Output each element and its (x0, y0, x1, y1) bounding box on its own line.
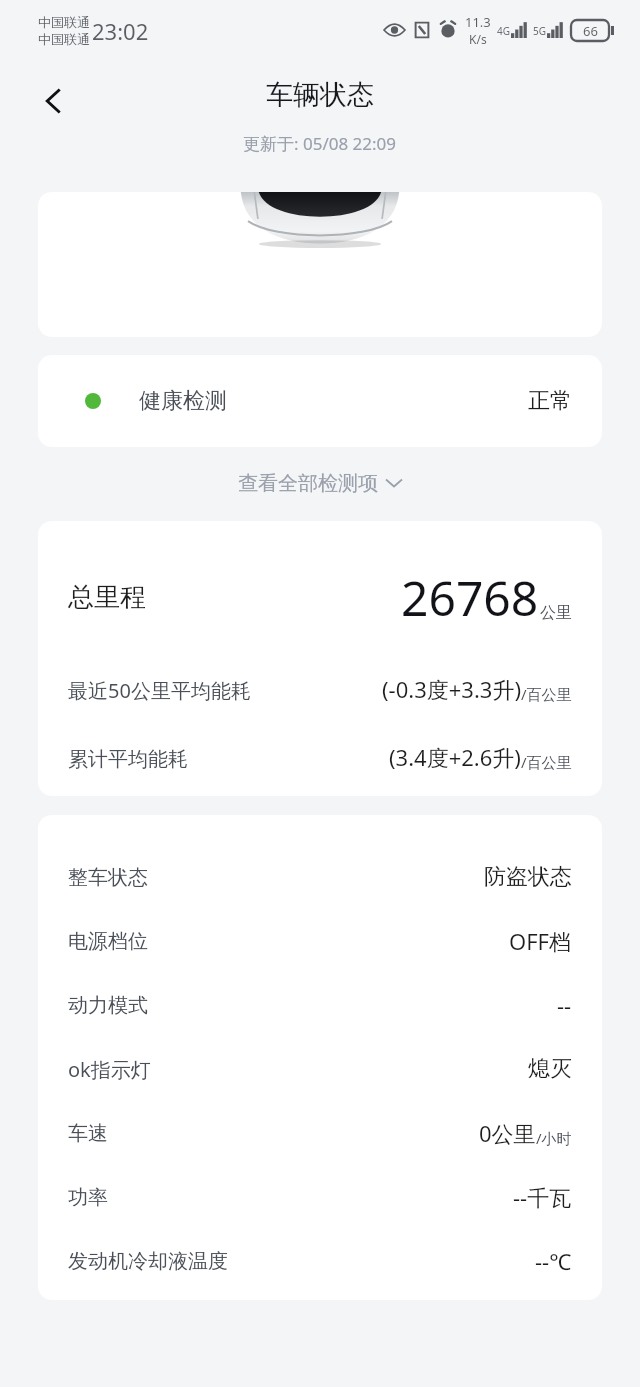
staticText: 23:02 (92, 16, 149, 46)
button[interactable]: 整车状态 (38, 845, 602, 909)
staticText: 防盗状态 (484, 863, 572, 891)
staticText: 公里 (540, 603, 572, 623)
staticText: 动力模式 (68, 993, 148, 1018)
button[interactable] (38, 192, 602, 337)
staticText: --千瓦 (513, 1182, 572, 1212)
staticText: -- (557, 990, 572, 1020)
button[interactable]: 发动机冷却液温度 (38, 1229, 602, 1293)
staticText: (3.4度+2.6升) (389, 742, 521, 772)
button[interactable]: 查看全部检测项 (0, 463, 640, 503)
button[interactable]: 车速 (38, 1101, 602, 1165)
staticText: 电源档位 (68, 929, 148, 954)
staticText: 4G (497, 24, 510, 38)
staticText: /百公里 (521, 684, 572, 704)
staticText: 车辆状态 (266, 78, 374, 112)
button[interactable]: 健康检测 (38, 355, 602, 447)
staticText: /小时 (536, 1128, 572, 1148)
staticText: 66 (583, 22, 598, 40)
button[interactable]: 总里程 (38, 521, 602, 796)
staticText: 5G (533, 24, 546, 38)
button[interactable]: 功率 (38, 1165, 602, 1229)
staticText: 11.3 (465, 13, 491, 31)
staticText: 最近50公里平均能耗 (68, 677, 251, 704)
button[interactable]: 电源档位 (38, 909, 602, 973)
staticText: 中国联通 (38, 31, 90, 47)
staticText: ok指示灯 (68, 1056, 151, 1083)
staticText: 26768 (401, 565, 539, 630)
staticText: 整车状态 (68, 865, 148, 890)
staticText: (-0.3度+3.3升) (382, 674, 521, 704)
staticText: OFF档 (509, 926, 572, 956)
button[interactable]: 动力模式 (38, 973, 602, 1037)
staticText: --℃ (535, 1246, 572, 1276)
staticText: 累计平均能耗 (68, 747, 188, 772)
button[interactable]: 返回 (26, 73, 82, 129)
staticText: K/s (469, 31, 487, 47)
staticText: 查看全部检测项 (238, 471, 378, 496)
staticText: 中国联通 (38, 14, 90, 30)
staticText: 总里程 (68, 581, 146, 614)
staticText: 正常 (528, 387, 572, 415)
staticText: 0公里 (479, 1118, 536, 1148)
staticText: 发动机冷却液温度 (68, 1249, 228, 1274)
staticText: 熄灭 (528, 1055, 572, 1083)
staticText: 功率 (68, 1185, 108, 1210)
staticText: /百公里 (521, 752, 572, 772)
staticText: 车速 (68, 1121, 108, 1146)
staticText: 健康检测 (139, 387, 227, 415)
button[interactable]: ok指示灯 (38, 1037, 602, 1101)
staticText: 更新于: 05/08 22:09 (243, 132, 397, 155)
